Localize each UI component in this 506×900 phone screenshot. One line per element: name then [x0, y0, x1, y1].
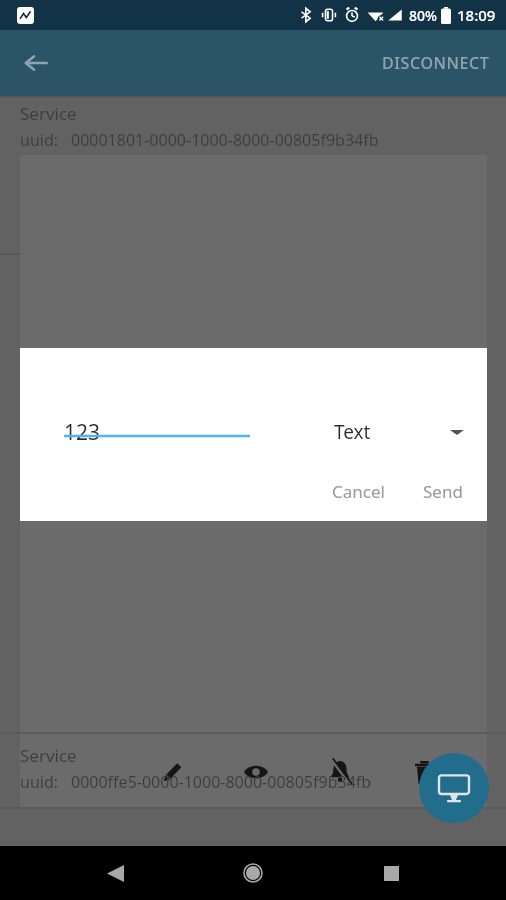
staticText: 00001801-0000-1000-8000-00805f9b34fb [71, 129, 379, 151]
button[interactable]: Back [12, 39, 60, 87]
staticText: Cancel [332, 480, 385, 503]
button[interactable]: Delete [402, 750, 446, 794]
button[interactable]: Edit [150, 750, 194, 794]
button[interactable]: Back [92, 850, 138, 896]
staticText: uuid: [20, 129, 59, 151]
button[interactable]: Text [320, 410, 470, 454]
button[interactable]: Open terminal [419, 753, 489, 823]
staticText: uuid: [20, 771, 59, 793]
staticText: 0000ffe5-0000-1000-8000-00805f9b34fb [71, 771, 372, 793]
button[interactable]: Notifications off [318, 750, 362, 794]
button[interactable]: DISCONNECT [366, 40, 506, 86]
button[interactable]: Home [230, 850, 276, 896]
button[interactable]: 123 [44, 410, 250, 456]
staticText: 18:09 [457, 5, 496, 25]
staticText: Service [20, 744, 77, 767]
staticText: Text [334, 419, 371, 445]
button[interactable]: Cancel [318, 470, 399, 513]
button[interactable]: Send [409, 470, 477, 513]
button[interactable]: Recent apps [368, 850, 414, 896]
staticText: Send [423, 480, 463, 503]
staticText: Service [20, 102, 77, 125]
staticText: 80% [409, 6, 437, 25]
button[interactable]: Read [234, 750, 278, 794]
staticText: DISCONNECT [382, 52, 490, 74]
staticText: 123 [64, 418, 101, 447]
